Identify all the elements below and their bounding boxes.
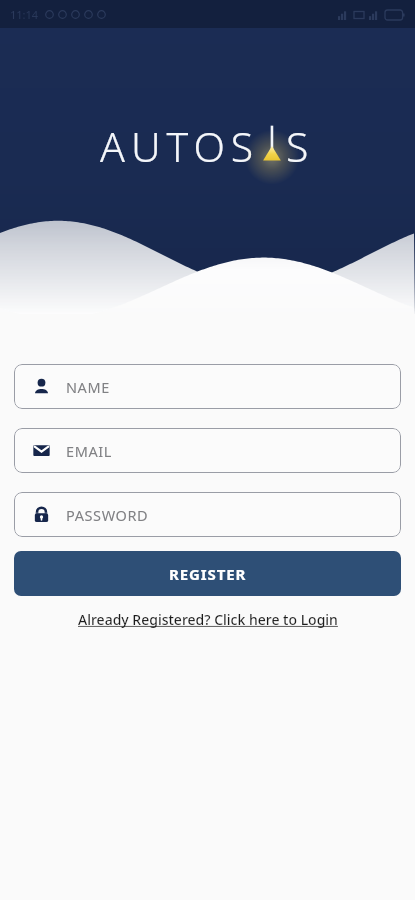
staticText: S [286,118,315,174]
button[interactable]: PASSWORD [14,492,401,537]
button[interactable]: NAME [14,364,401,409]
staticText: PASSWORD [66,505,149,525]
button[interactable]: REGISTER [14,551,401,596]
staticText: NAME [66,377,110,397]
staticText: EMAIL [66,441,112,461]
staticText: 11:14 [10,7,39,22]
staticText: AUTOS [100,118,260,174]
button[interactable]: Already Registered? Click here to Login [72,607,344,632]
button[interactable]: EMAIL [14,428,401,473]
staticText: Already Registered? Click here to Login [78,610,338,629]
staticText: REGISTER [169,564,247,584]
